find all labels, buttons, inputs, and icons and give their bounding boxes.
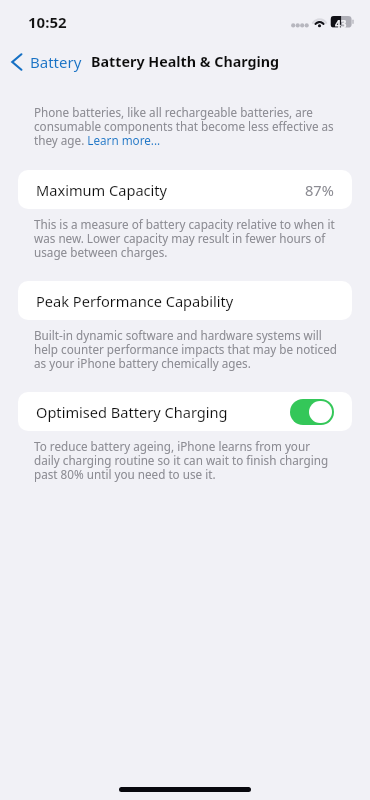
staticText: 43 — [335, 17, 347, 31]
staticText: This is a measure of battery capacity re… — [34, 216, 338, 260]
staticText: Phone batteries, like all rechargeable b… — [34, 104, 338, 148]
staticText: Battery Health & Charging — [91, 52, 280, 71]
staticText: Peak Performance Capability — [36, 291, 234, 311]
staticText: To reduce battery ageing, iPhone learns … — [34, 438, 338, 482]
button[interactable]: Optimised Battery Charging toggle — [290, 399, 334, 425]
staticText: Maximum Capacity — [36, 180, 168, 200]
staticText: Built-in dynamic software and hardware s… — [34, 327, 338, 371]
staticText: 10:52 — [28, 12, 67, 32]
staticText: Optimised Battery Charging — [36, 402, 228, 422]
button[interactable]: Battery — [0, 48, 88, 74]
staticText: 87% — [305, 180, 334, 200]
button[interactable]: Optimised Battery Charging — [18, 392, 352, 431]
button[interactable]: Maximum Capacity — [18, 170, 352, 209]
staticText: Battery — [30, 52, 82, 72]
button[interactable]: Peak Performance Capability — [18, 281, 352, 320]
